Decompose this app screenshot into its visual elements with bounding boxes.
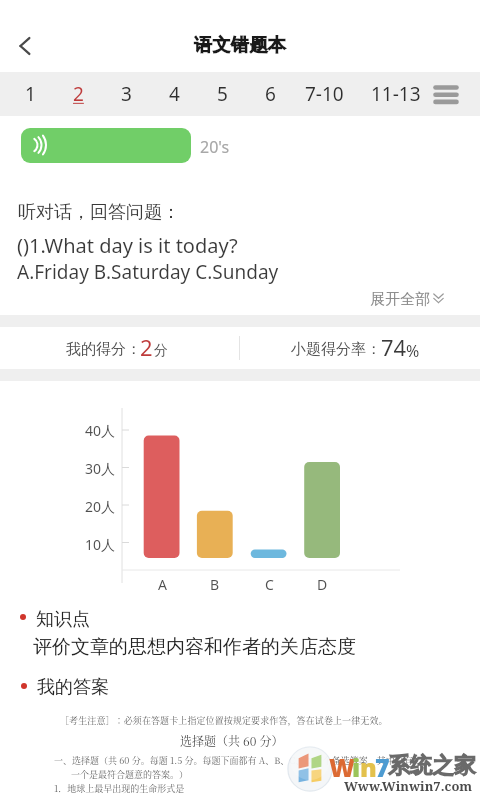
staticText: 74	[381, 332, 407, 362]
button[interactable]: 6	[250, 72, 290, 116]
button[interactable]: 5	[202, 72, 242, 116]
staticText: 一个是最符合题意的答案。）	[71, 768, 189, 781]
staticText: 20's	[200, 136, 230, 158]
staticText: 知识点	[36, 608, 90, 631]
staticText: 1．地球上最早出现的生命形式是	[54, 782, 185, 795]
staticText: 语文错题本	[194, 34, 286, 57]
staticText: A	[158, 575, 167, 594]
button[interactable]: 7-10	[294, 72, 354, 116]
staticText: 分	[154, 342, 168, 360]
staticText: ()1.What day is it today?	[17, 232, 238, 259]
button[interactable]	[260, 327, 460, 369]
button[interactable]: Menu	[418, 72, 474, 116]
button[interactable]: 2	[58, 72, 98, 116]
staticText: 4	[169, 81, 180, 107]
button[interactable]: Play audio	[21, 128, 191, 163]
staticText: 11-13	[371, 81, 421, 107]
button[interactable]	[40, 327, 240, 369]
staticText: 2	[73, 81, 84, 107]
staticText: i	[352, 750, 361, 784]
staticText: 7	[375, 750, 390, 784]
button[interactable]	[362, 284, 450, 310]
staticText: 一、选择题（共 60 分。每题 1.5 分。每题下面都有 A、B、C、D 四个备…	[54, 754, 413, 767]
button[interactable]: 11-13	[366, 72, 426, 116]
staticText: ［考生注意］：必须在答题卡上指定位置按规定要求作答，答在试卷上一律无效。	[60, 714, 388, 727]
staticText: Www.Winwin7.com	[344, 777, 473, 795]
staticText: 我的得分：	[66, 340, 141, 359]
staticText: 7-10	[305, 81, 344, 107]
staticText: 6	[265, 81, 276, 107]
staticText: W	[329, 750, 355, 784]
staticText: 40人	[84, 421, 115, 440]
staticText: 30人	[84, 459, 115, 478]
staticText: 选择题（共 60 分）	[180, 732, 284, 749]
staticText: 小题得分率：	[291, 340, 381, 359]
staticText: 5	[217, 81, 228, 107]
staticText: 评价文章的思想内容和作者的关店态度	[33, 635, 356, 659]
staticText: A.Friday B.Saturday C.Sunday	[17, 259, 279, 285]
button[interactable]: 3	[106, 72, 146, 116]
button[interactable]: 4	[154, 72, 194, 116]
button[interactable]: 1	[10, 72, 50, 116]
staticText: C	[265, 575, 274, 594]
staticText: n	[360, 750, 377, 784]
staticText: %	[406, 340, 420, 362]
staticText: 我的答案	[37, 676, 109, 699]
staticText: B	[210, 575, 220, 594]
staticText: 10人	[84, 535, 115, 554]
staticText: D	[317, 575, 328, 594]
staticText: 3	[121, 81, 132, 107]
staticText: 2	[140, 332, 153, 362]
staticText: 听对话，回答问题：	[18, 201, 180, 224]
staticText: 1	[25, 81, 36, 107]
staticText: 系统之家	[388, 752, 476, 780]
staticText: 20人	[84, 497, 115, 516]
staticText: 展开全部	[370, 290, 430, 309]
button[interactable]: Back	[2, 23, 48, 69]
